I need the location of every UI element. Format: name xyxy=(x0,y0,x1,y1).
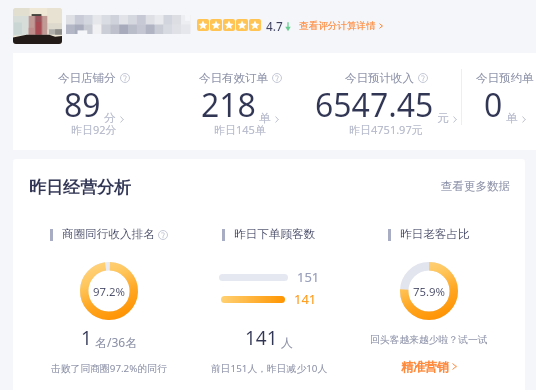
staticText: 89 xyxy=(64,83,101,127)
button[interactable]: 今日预计收入 xyxy=(296,53,476,150)
button[interactable]: 查看评分计算详情 xyxy=(299,20,383,32)
staticText: 昨日经营分析 xyxy=(29,177,131,198)
staticText: 141 xyxy=(245,325,278,351)
button[interactable]: Shop photo xyxy=(13,8,62,44)
staticText: 1 xyxy=(81,325,92,351)
staticText: 单 xyxy=(259,111,271,125)
staticText: 昨日145单 xyxy=(214,122,266,137)
staticText: 分 xyxy=(104,111,116,125)
staticText: 回头客越来越少啦？试一试 xyxy=(370,334,488,346)
staticText: 141 xyxy=(294,290,317,308)
staticText: 昨日老客占比 xyxy=(400,227,470,242)
staticText: 昨日92分 xyxy=(71,122,117,137)
staticText: 151 xyxy=(297,268,320,286)
staticText: 人 xyxy=(281,335,293,350)
staticText: 今日有效订单 xyxy=(199,71,268,85)
staticText: 名/36名 xyxy=(95,334,138,350)
button[interactable]: 今日店铺分 xyxy=(4,53,184,150)
button[interactable]: 精准营销 xyxy=(401,359,457,374)
staticText: 97.2% xyxy=(93,284,126,300)
staticText: 75.9% xyxy=(413,284,446,300)
staticText: 今日店铺分 xyxy=(58,71,116,85)
button[interactable]: 今日预约单 xyxy=(415,53,536,150)
staticText: 昨日下单顾客数 xyxy=(234,227,316,242)
button[interactable]: 查看更多数据 xyxy=(441,179,510,193)
button[interactable]: 今日有效订单 xyxy=(150,53,330,150)
staticText: 查看更多数据 xyxy=(441,179,510,193)
staticText: 今日预约单 xyxy=(476,71,534,85)
staticText: 4.7 xyxy=(266,18,283,34)
staticText: 精准营销 xyxy=(401,359,449,374)
staticText: 击败了同商圈97.2%的同行 xyxy=(51,362,167,375)
staticText: 前日151人，昨日减少10人 xyxy=(211,362,328,375)
staticText: 商圈同行收入排名 xyxy=(62,227,155,242)
staticText: 218 xyxy=(201,83,256,127)
staticText: 0 xyxy=(484,83,503,127)
staticText: 元 xyxy=(437,111,449,125)
staticText: 6547.45 xyxy=(315,83,434,127)
staticText: 查看评分计算详情 xyxy=(299,20,376,32)
staticText: 今日预计收入 xyxy=(345,71,414,85)
staticText: 昨日4751.97元 xyxy=(349,122,423,137)
staticText: 单 xyxy=(506,111,518,125)
